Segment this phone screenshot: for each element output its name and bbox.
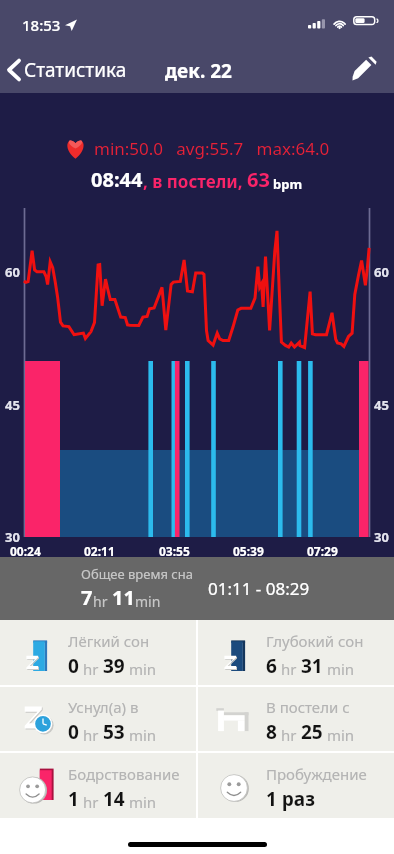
staticText: 53	[103, 719, 125, 745]
staticText: 30	[5, 528, 20, 546]
staticText: 1	[68, 786, 79, 812]
staticText: В постели с	[266, 697, 350, 717]
button[interactable]: Пробуждение	[198, 753, 394, 818]
staticText: 45	[374, 396, 389, 414]
staticText: 31	[301, 653, 323, 679]
staticText: Уснул(а) в	[68, 697, 139, 717]
staticText: min	[323, 725, 355, 745]
staticText: 18:53	[22, 15, 61, 35]
staticText: , в постели,	[143, 170, 247, 193]
staticText: hr	[79, 792, 103, 812]
staticText: Общее время сна	[81, 565, 193, 583]
staticText: 0	[68, 653, 79, 679]
staticText: дек. 22	[165, 58, 232, 84]
staticText: 02:11	[84, 543, 115, 559]
staticText: 60	[374, 263, 389, 281]
staticText: 45	[5, 396, 20, 414]
staticText: Пробуждение	[266, 764, 367, 784]
staticText: hr	[93, 592, 112, 611]
staticText: 7	[81, 584, 93, 611]
staticText: min	[125, 659, 157, 679]
staticText: 05:39	[233, 543, 264, 559]
staticText: 63	[247, 166, 270, 193]
staticText: 11	[112, 584, 135, 611]
staticText: 14	[103, 786, 125, 812]
staticText: 07:29	[307, 543, 338, 559]
staticText: min:50.0 avg:55.7 max:64.0	[94, 137, 330, 160]
button[interactable]: Статистика	[0, 51, 137, 89]
staticText: 08:44	[91, 166, 143, 193]
staticText: Статистика	[24, 57, 127, 83]
staticText: 25	[301, 719, 323, 745]
staticText: bpm	[273, 175, 303, 193]
staticText: min	[125, 792, 157, 812]
staticText: 6	[266, 653, 277, 679]
button[interactable]: Бодрствование	[0, 753, 196, 818]
staticText: Глубокий сон	[266, 631, 364, 651]
staticText: 0	[68, 719, 79, 745]
staticText: 30	[374, 528, 389, 546]
staticText: 03:55	[159, 543, 190, 559]
staticText: Бодрствование	[68, 764, 180, 784]
staticText: 60	[5, 263, 20, 281]
staticText: 8	[266, 719, 277, 745]
staticText: hr	[79, 659, 103, 679]
button[interactable]: Глубокий сон	[198, 620, 394, 685]
button[interactable]: Уснул(а) в	[0, 687, 196, 751]
staticText: 1 раз	[266, 786, 315, 812]
staticText: Лёгкий сон	[68, 631, 150, 651]
staticText: 01:11 - 08:29	[208, 577, 310, 600]
staticText: min	[125, 725, 157, 745]
staticText: hr	[79, 725, 103, 745]
button[interactable]: Редактировать	[346, 50, 382, 86]
staticText: hr	[277, 659, 301, 679]
staticText: 00:24	[10, 543, 41, 559]
button[interactable]: В постели с	[198, 687, 394, 751]
staticText: min	[135, 592, 161, 611]
button[interactable]: Лёгкий сон	[0, 620, 196, 685]
staticText: 39	[103, 653, 125, 679]
staticText: min	[323, 659, 355, 679]
staticText: hr	[277, 725, 301, 745]
